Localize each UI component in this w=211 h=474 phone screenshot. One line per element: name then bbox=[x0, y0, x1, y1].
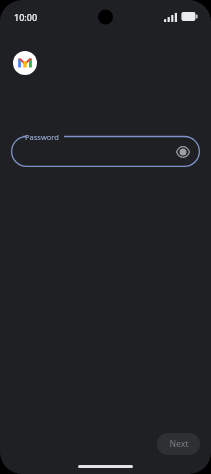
staticText: Password bbox=[25, 132, 59, 142]
staticText: Next bbox=[169, 438, 189, 450]
staticText: 10:00 bbox=[14, 11, 38, 23]
button[interactable]: Password bbox=[11, 131, 200, 167]
button[interactable]: Gmail bbox=[13, 51, 37, 75]
button[interactable]: Next bbox=[157, 433, 200, 455]
button[interactable]: Show password bbox=[174, 143, 192, 161]
